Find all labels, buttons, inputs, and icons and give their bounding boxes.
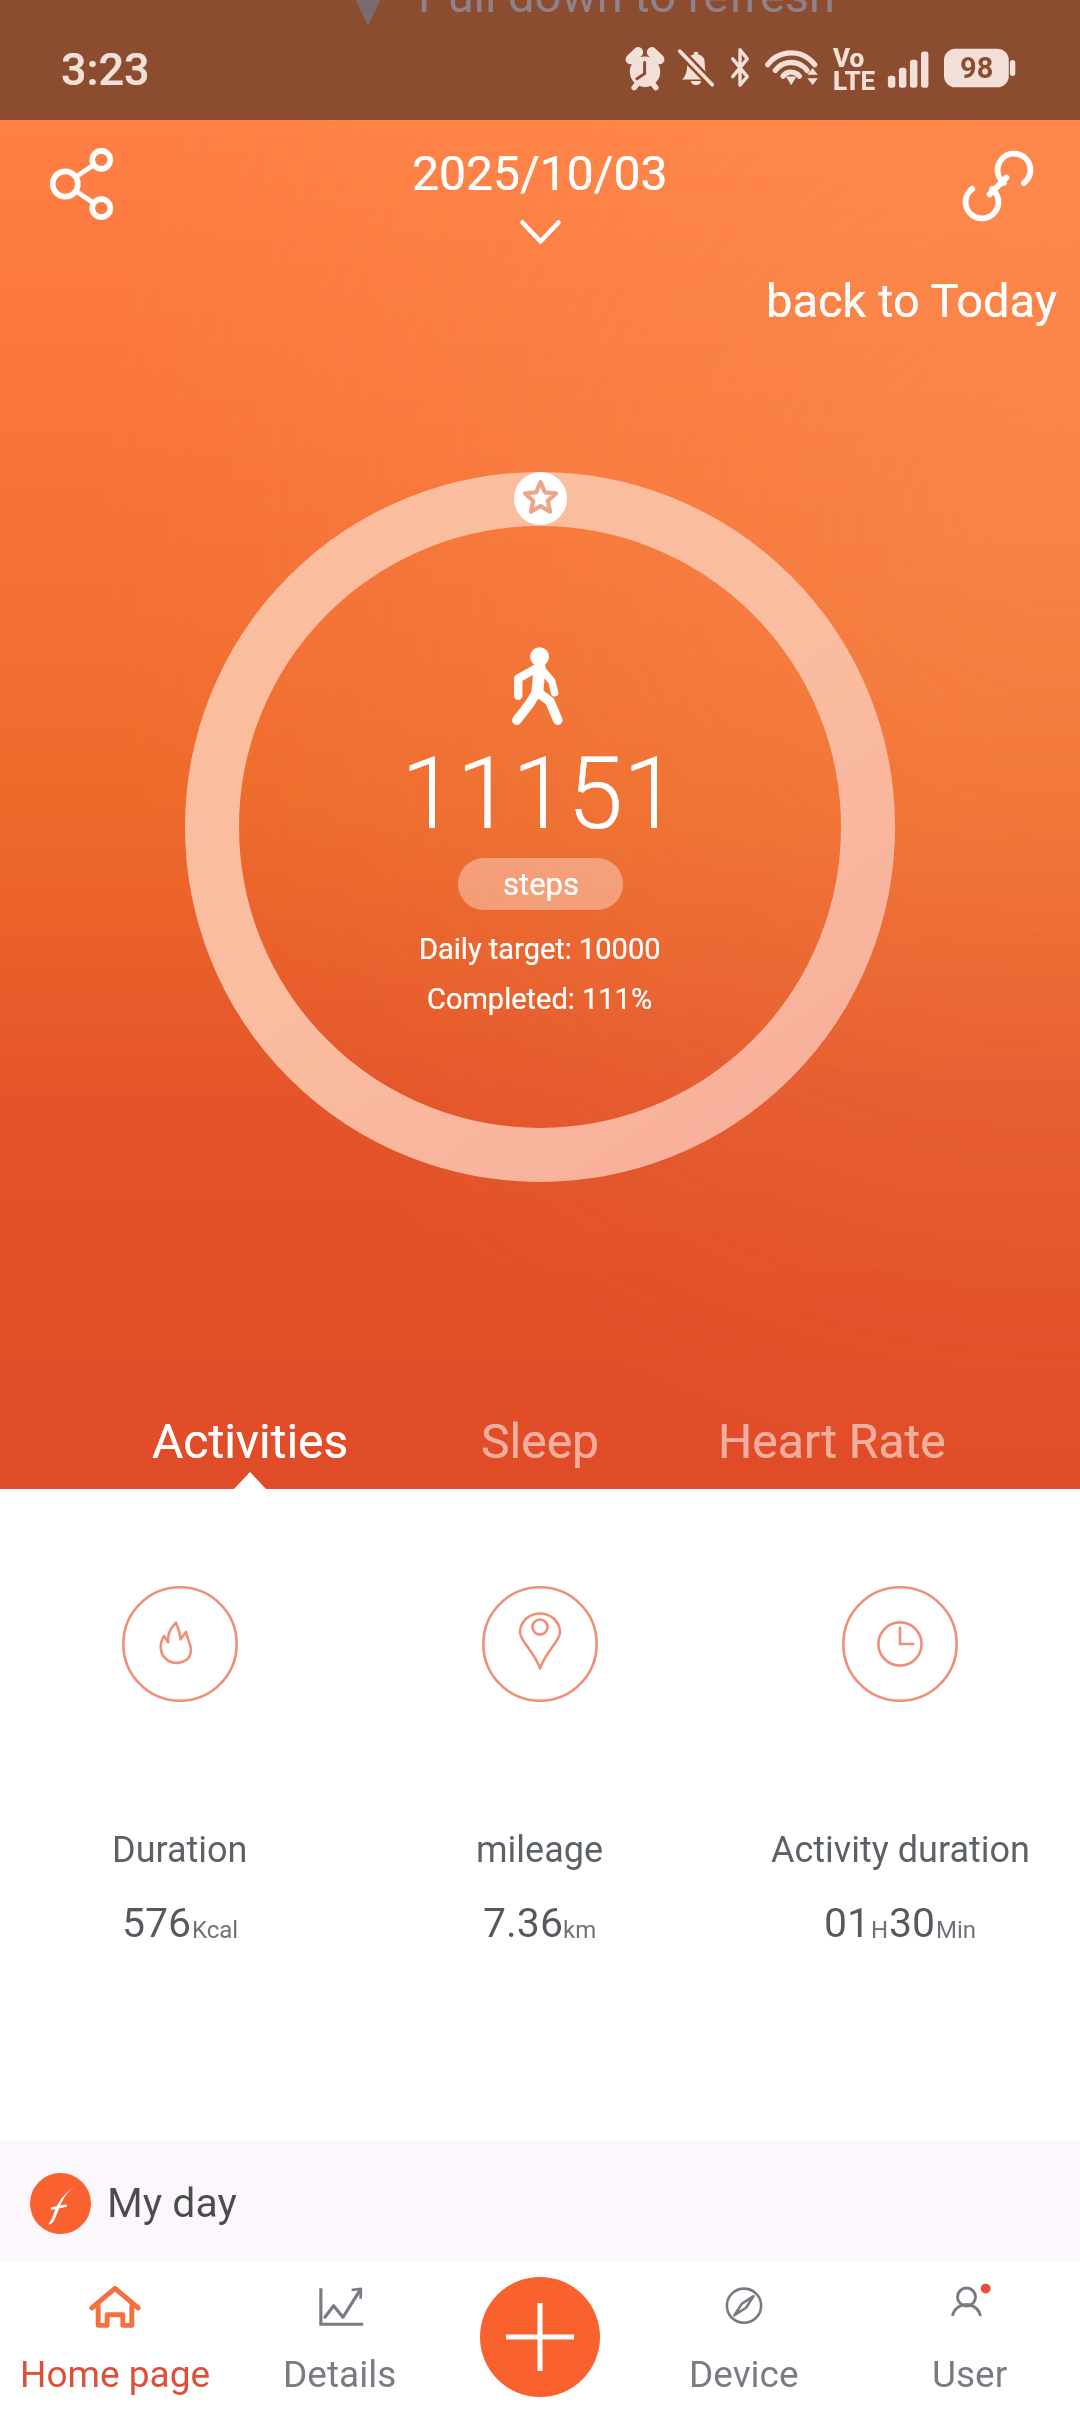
button[interactable]: 2025/10/03 [0,145,1080,244]
staticText: Device [689,2353,799,2396]
staticText: steps [503,866,579,902]
button[interactable]: Home page [15,2262,215,2412]
staticText: 11151 [401,735,679,852]
staticText: 98 [960,51,994,85]
staticText: Pull down to refresh [418,0,836,23]
staticText: Min [936,1916,977,1944]
staticText: LTE [833,66,876,96]
staticText: H [871,1916,889,1944]
staticText: Details [283,2353,397,2396]
button[interactable]: User [870,2262,1070,2412]
button[interactable]: Duration [0,1586,360,1947]
button[interactable]: Share [26,126,142,242]
staticText: mileage [476,1829,604,1871]
button[interactable]: Heart Rate [692,1413,972,1502]
button[interactable]: Activity duration [720,1586,1080,1947]
staticText: 2025/10/03 [412,145,668,201]
button[interactable]: Bind device [940,128,1056,244]
staticText: My day [107,2179,237,2227]
button[interactable]: mileage [360,1586,720,1947]
button[interactable]: back to Today [766,267,1080,334]
staticText: Vo [833,43,865,73]
staticText: Heart Rate [718,1413,946,1469]
button[interactable]: Device [644,2262,844,2412]
staticText: 30 [889,1899,936,1947]
staticText: Sleep [481,1413,600,1469]
button[interactable]: Details [240,2262,440,2412]
staticText: Completed: 111% [427,982,653,1016]
staticText: back to Today [766,273,1058,328]
staticText: 576 [122,1899,192,1947]
staticText: Kcal [192,1916,239,1944]
staticText: 7.36 [483,1899,563,1947]
button[interactable]: Add [480,2277,600,2397]
staticText: Daily target: 10000 [419,932,661,966]
staticText: km [563,1916,597,1944]
staticText: Activities [152,1413,349,1469]
staticText: Home page [20,2353,211,2396]
button[interactable]: Sleep [400,1413,680,1502]
staticText: 3:23 [61,43,150,96]
staticText: Activity duration [771,1829,1030,1871]
button[interactable]: My day [0,2140,1080,2266]
staticText: Duration [112,1829,248,1871]
button[interactable]: Activities [110,1413,390,1502]
staticText: User [932,2353,1008,2396]
staticText: 01 [824,1899,871,1947]
